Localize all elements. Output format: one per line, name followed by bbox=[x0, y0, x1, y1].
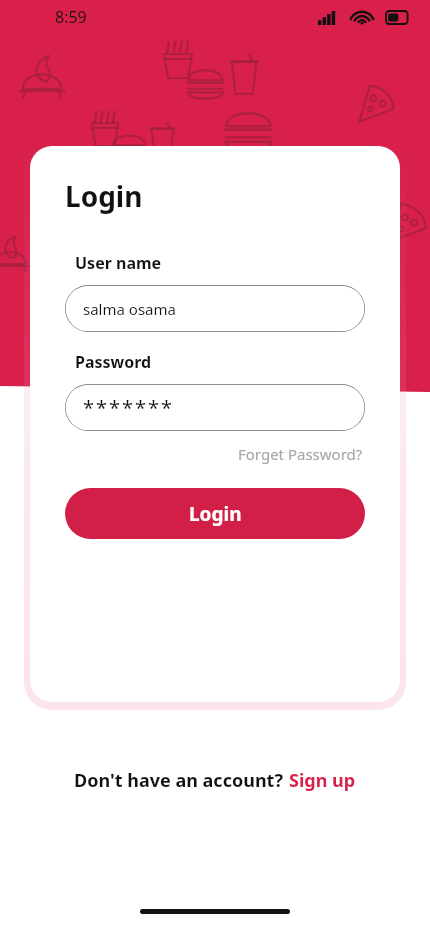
button[interactable]: Forget Password? bbox=[236, 441, 365, 467]
button[interactable]: salma osama bbox=[65, 285, 365, 332]
staticText: User name bbox=[75, 252, 162, 274]
button[interactable]: Login bbox=[65, 488, 365, 539]
staticText: Login bbox=[65, 177, 143, 215]
staticText: Don't have an account? bbox=[74, 768, 288, 793]
staticText: salma osama bbox=[83, 299, 176, 319]
staticText: ******* bbox=[83, 394, 175, 421]
staticText: Sign up bbox=[289, 768, 356, 793]
staticText: Login bbox=[189, 501, 242, 527]
staticText: 8:59 bbox=[55, 6, 87, 28]
button[interactable]: Sign up bbox=[288, 766, 357, 795]
staticText: Password bbox=[75, 351, 152, 373]
button[interactable]: ******* bbox=[65, 384, 365, 431]
